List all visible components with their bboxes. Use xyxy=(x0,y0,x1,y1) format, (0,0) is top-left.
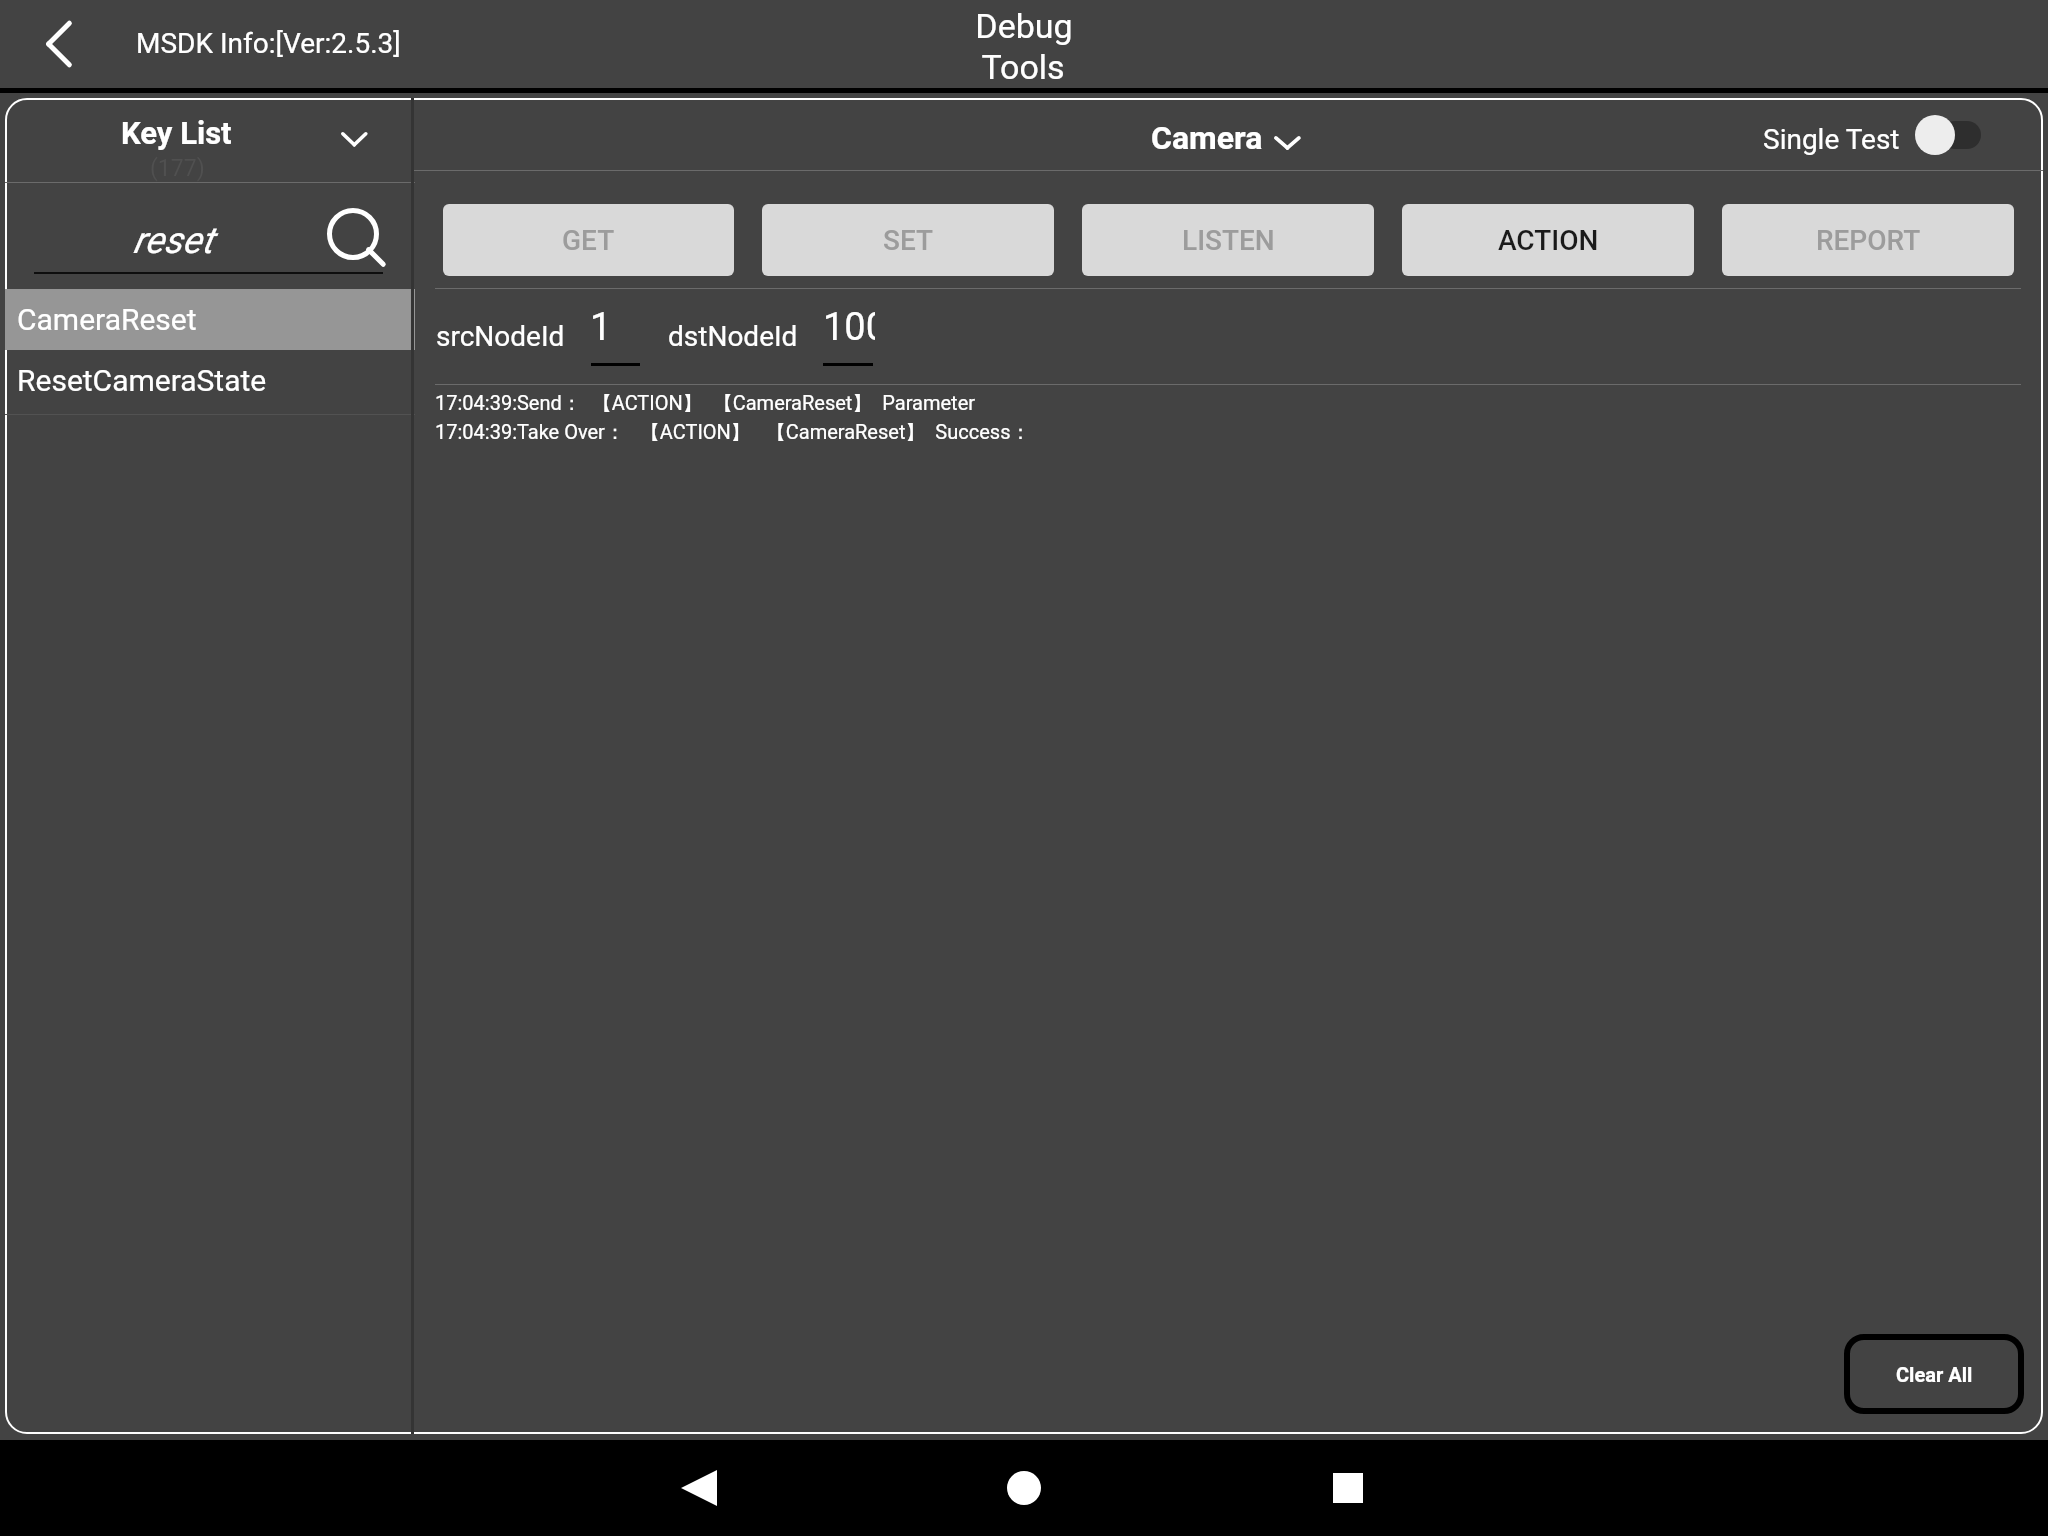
button[interactable]: REPORT xyxy=(1722,204,2014,276)
staticText: REPORT xyxy=(1816,224,1921,257)
staticText: SET xyxy=(883,224,934,257)
staticText: 1 xyxy=(590,305,612,350)
staticText: 17:04:39:Send： 【ACTION】 【CameraReset】 Pa… xyxy=(435,391,976,416)
button[interactable]: reset xyxy=(5,183,415,287)
button[interactable]: GET xyxy=(443,204,734,276)
staticText: MSDK Info:[Ver:2.5.3] xyxy=(136,27,401,60)
button[interactable]: Single Test xyxy=(1754,108,1891,162)
button[interactable]: Search xyxy=(317,200,389,272)
staticText: srcNodeId xyxy=(436,320,565,353)
button[interactable]: Home xyxy=(979,1443,1069,1533)
staticText: Clear All xyxy=(1896,1363,1973,1386)
staticText: GET xyxy=(562,224,615,257)
staticText: Single Test xyxy=(1763,123,1900,156)
staticText: dstNodeId xyxy=(668,320,798,353)
staticText: (177) xyxy=(150,155,205,182)
staticText: reset xyxy=(133,219,214,262)
staticText: 100 xyxy=(823,305,875,350)
button[interactable]: LISTEN xyxy=(1082,204,1374,276)
staticText: 17:04:39:Take Over： 【ACTION】 【CameraRese… xyxy=(435,420,1031,445)
button[interactable]: ResetCameraState xyxy=(5,352,415,414)
staticText: LISTEN xyxy=(1182,224,1275,257)
button[interactable]: Clear All xyxy=(1844,1334,2024,1414)
button[interactable]: Back xyxy=(654,1443,744,1533)
staticText: Tools xyxy=(981,47,1065,87)
button[interactable]: Camera xyxy=(1142,110,1254,160)
button[interactable]: Back xyxy=(28,12,92,76)
staticText: Debug xyxy=(975,6,1073,46)
staticText: ResetCameraState xyxy=(17,363,267,398)
button[interactable]: SET xyxy=(762,204,1054,276)
staticText: ACTION xyxy=(1498,224,1599,257)
staticText: Camera xyxy=(1151,119,1263,157)
staticText: CameraReset xyxy=(17,302,197,337)
button[interactable]: Key List xyxy=(5,98,415,182)
button[interactable]: CameraReset xyxy=(5,289,415,350)
button[interactable]: ACTION xyxy=(1402,204,1694,276)
staticText: Key List xyxy=(121,115,232,151)
button[interactable]: Recents xyxy=(1303,1443,1393,1533)
